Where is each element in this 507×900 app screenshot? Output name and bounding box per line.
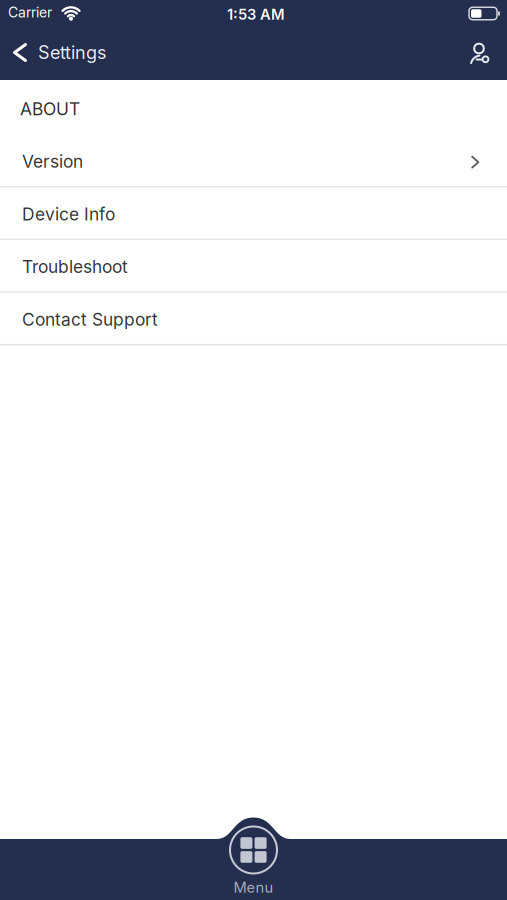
button[interactable]: Menu: [230, 818, 277, 896]
staticText: Settings: [38, 42, 107, 63]
button[interactable]: Back to Settings: [0, 25, 107, 80]
button[interactable]: Account: [466, 38, 507, 66]
button[interactable]: Version: [0, 135, 507, 186]
staticText: Device Info: [22, 204, 115, 225]
button[interactable]: Device Info: [0, 188, 507, 239]
staticText: Contact Support: [22, 309, 158, 330]
staticText: 1:53 AM: [227, 6, 285, 23]
staticText: Troubleshoot: [22, 256, 128, 277]
staticText: ABOUT: [20, 98, 80, 119]
button[interactable]: Troubleshoot: [0, 240, 507, 291]
staticText: Carrier: [8, 4, 52, 21]
staticText: Version: [22, 151, 83, 172]
staticText: Menu: [233, 878, 273, 896]
button[interactable]: Contact Support: [0, 293, 507, 344]
